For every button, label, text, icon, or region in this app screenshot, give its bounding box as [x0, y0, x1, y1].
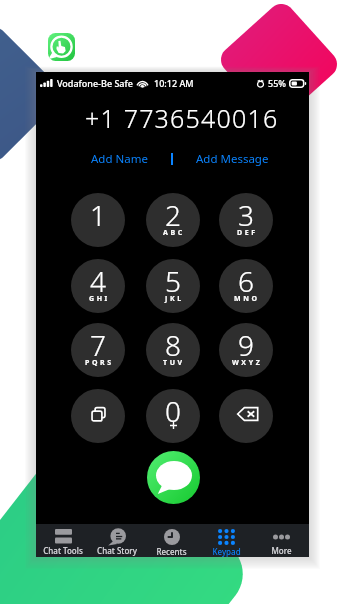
staticText: Chat Tools	[43, 545, 83, 556]
staticText: PQRS	[85, 358, 114, 368]
button[interactable]: Keypad	[199, 524, 254, 557]
staticText: JKL	[165, 294, 184, 304]
button[interactable]: Chat Tools	[36, 524, 90, 557]
staticText: 6	[238, 262, 254, 300]
staticText: 5	[165, 262, 181, 300]
staticText: 9	[238, 326, 254, 364]
staticText: 10:12 AM	[154, 77, 194, 89]
staticText: WXYZ	[232, 358, 263, 368]
staticText: Recents	[156, 546, 187, 557]
staticText: 3	[238, 196, 254, 234]
button[interactable]: Backspace	[219, 389, 273, 443]
staticText: 8	[165, 326, 181, 364]
staticText: Add Message	[196, 151, 269, 167]
button[interactable]: 7	[71, 323, 125, 377]
staticText: Add Name	[91, 151, 148, 167]
button[interactable]: 3	[219, 193, 273, 247]
button[interactable]: WhatsApp	[48, 33, 75, 61]
button[interactable]: 0	[146, 389, 200, 443]
button[interactable]: Voicemail	[71, 389, 125, 443]
button[interactable]: Add Name	[36, 148, 171, 170]
staticText: MNO	[234, 294, 260, 304]
staticText: 0	[165, 392, 181, 430]
button[interactable]: 2	[146, 193, 200, 247]
button[interactable]: 8	[146, 323, 200, 377]
staticText: Chat Story	[97, 545, 137, 556]
staticText: 1	[90, 196, 106, 234]
staticText: TUV	[163, 358, 185, 368]
button[interactable]: 9	[219, 323, 273, 377]
button[interactable]: 1	[71, 193, 125, 247]
staticText: 2	[165, 196, 181, 234]
staticText: 7	[90, 326, 106, 364]
staticText: DEF	[237, 228, 258, 238]
button[interactable]: Recents	[144, 524, 199, 557]
staticText: Keypad	[212, 546, 241, 557]
button[interactable]: 4	[71, 259, 125, 313]
staticText: ABC	[163, 228, 185, 238]
button[interactable]: Chat Story	[90, 524, 144, 557]
button[interactable]: Add Message	[173, 148, 309, 170]
staticText: More	[271, 545, 292, 556]
staticText: Vodafone-Be Safe	[57, 77, 133, 89]
button[interactable]: 6	[219, 259, 273, 313]
button[interactable]: More	[254, 524, 309, 557]
button[interactable]: 5	[146, 259, 200, 313]
staticText: 55%	[268, 77, 286, 89]
staticText: +1 7736540016	[85, 101, 279, 135]
button[interactable]: Call	[147, 451, 200, 504]
staticText: 4	[90, 262, 106, 300]
staticText: GHI	[89, 294, 110, 304]
